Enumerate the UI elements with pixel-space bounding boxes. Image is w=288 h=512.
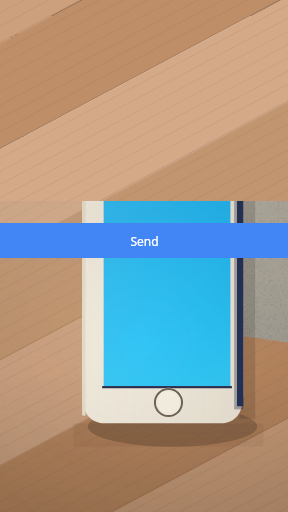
- staticText: Back: [27, 26, 58, 44]
- button[interactable]: Email *: [0, 118, 288, 153]
- button[interactable]: Prénom *: [0, 82, 288, 117]
- button[interactable]: Message *: [0, 154, 288, 189]
- staticText: Email *: [12, 128, 50, 143]
- button[interactable]: Send: [0, 223, 288, 258]
- button[interactable]: Back: [0, 20, 64, 50]
- button[interactable]: Envoyer le formulaire: [0, 55, 288, 81]
- staticText: Send: [130, 233, 159, 249]
